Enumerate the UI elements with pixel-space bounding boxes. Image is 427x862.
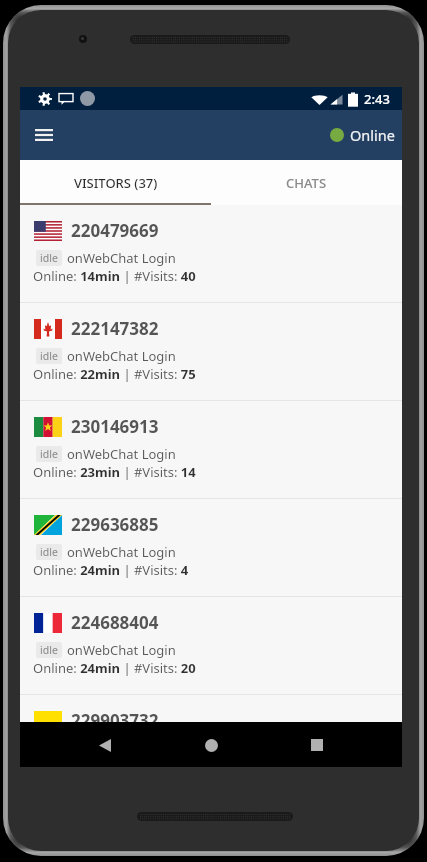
staticText: 229636885 (71, 513, 159, 536)
button[interactable]: CHATS (211, 160, 402, 205)
staticText: idle (40, 643, 58, 657)
staticText: Online: 23min | #Visits: 14 (33, 463, 196, 481)
button[interactable]: 230146913 (20, 401, 402, 498)
staticText: idle (40, 447, 58, 461)
button[interactable]: 229903732 (20, 695, 402, 722)
staticText: 230146913 (71, 415, 159, 438)
staticText: onWebChat Login (67, 347, 176, 365)
staticText: onWebChat Login (67, 445, 176, 463)
button[interactable]: Home (191, 725, 231, 765)
staticText: VISITORS (37) (74, 174, 158, 192)
staticText: Online (350, 125, 395, 145)
staticText: onWebChat Login (67, 543, 176, 561)
staticText: CHATS (286, 174, 327, 192)
button[interactable]: 229636885 (20, 499, 402, 596)
staticText: Online: 24min | #Visits: 4 (33, 561, 189, 579)
staticText: Online: 24min | #Visits: 20 (33, 659, 196, 677)
staticText: 229903732 (71, 709, 159, 722)
button[interactable]: 224688404 (20, 597, 402, 694)
staticText: idle (40, 545, 58, 559)
button[interactable]: Open navigation menu (20, 111, 68, 159)
staticText: 2:43 (364, 90, 390, 108)
staticText: onWebChat Login (67, 641, 176, 659)
button[interactable]: VISITORS (37) (20, 160, 211, 205)
staticText: Online: 22min | #Visits: 75 (33, 365, 196, 383)
staticText: 224688404 (71, 611, 159, 634)
button[interactable]: Online (314, 117, 402, 153)
staticText: Online: 14min | #Visits: 40 (33, 267, 196, 285)
button[interactable]: 222147382 (20, 303, 402, 400)
button[interactable]: Recent apps (297, 725, 337, 765)
staticText: 220479669 (71, 219, 159, 242)
staticText: onWebChat Login (67, 249, 176, 267)
staticText: 222147382 (71, 317, 159, 340)
button[interactable]: Back (85, 725, 125, 765)
button[interactable]: 220479669 (20, 205, 402, 302)
staticText: idle (40, 251, 58, 265)
staticText: idle (40, 349, 58, 363)
